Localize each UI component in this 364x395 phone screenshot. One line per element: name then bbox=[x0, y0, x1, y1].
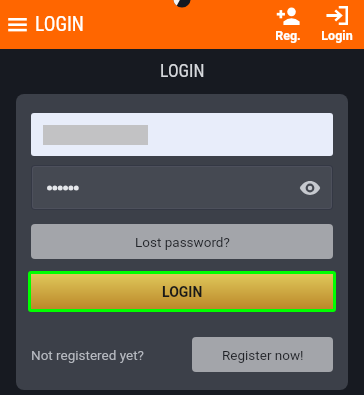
staticText: Login bbox=[321, 28, 353, 43]
staticText: Register now! bbox=[222, 347, 304, 363]
staticText: Reg. bbox=[275, 28, 301, 43]
button[interactable]: Lost password? bbox=[31, 224, 333, 259]
staticText: LOGIN bbox=[35, 13, 84, 36]
staticText: Lost password? bbox=[135, 234, 230, 250]
button[interactable]: Password bbox=[33, 167, 331, 208]
button[interactable]: Show password bbox=[296, 174, 324, 202]
button[interactable]: Register now! bbox=[192, 337, 333, 372]
staticText: LOGIN bbox=[162, 284, 203, 300]
button[interactable]: Username bbox=[31, 113, 333, 156]
button[interactable]: Register bbox=[263, 1, 312, 48]
button[interactable]: Login bbox=[312, 1, 361, 48]
staticText: LOGIN bbox=[160, 60, 205, 81]
button[interactable]: LOGIN bbox=[31, 274, 333, 309]
button[interactable]: Open navigation menu bbox=[3, 10, 32, 39]
staticText: Not registered yet? bbox=[31, 347, 144, 363]
